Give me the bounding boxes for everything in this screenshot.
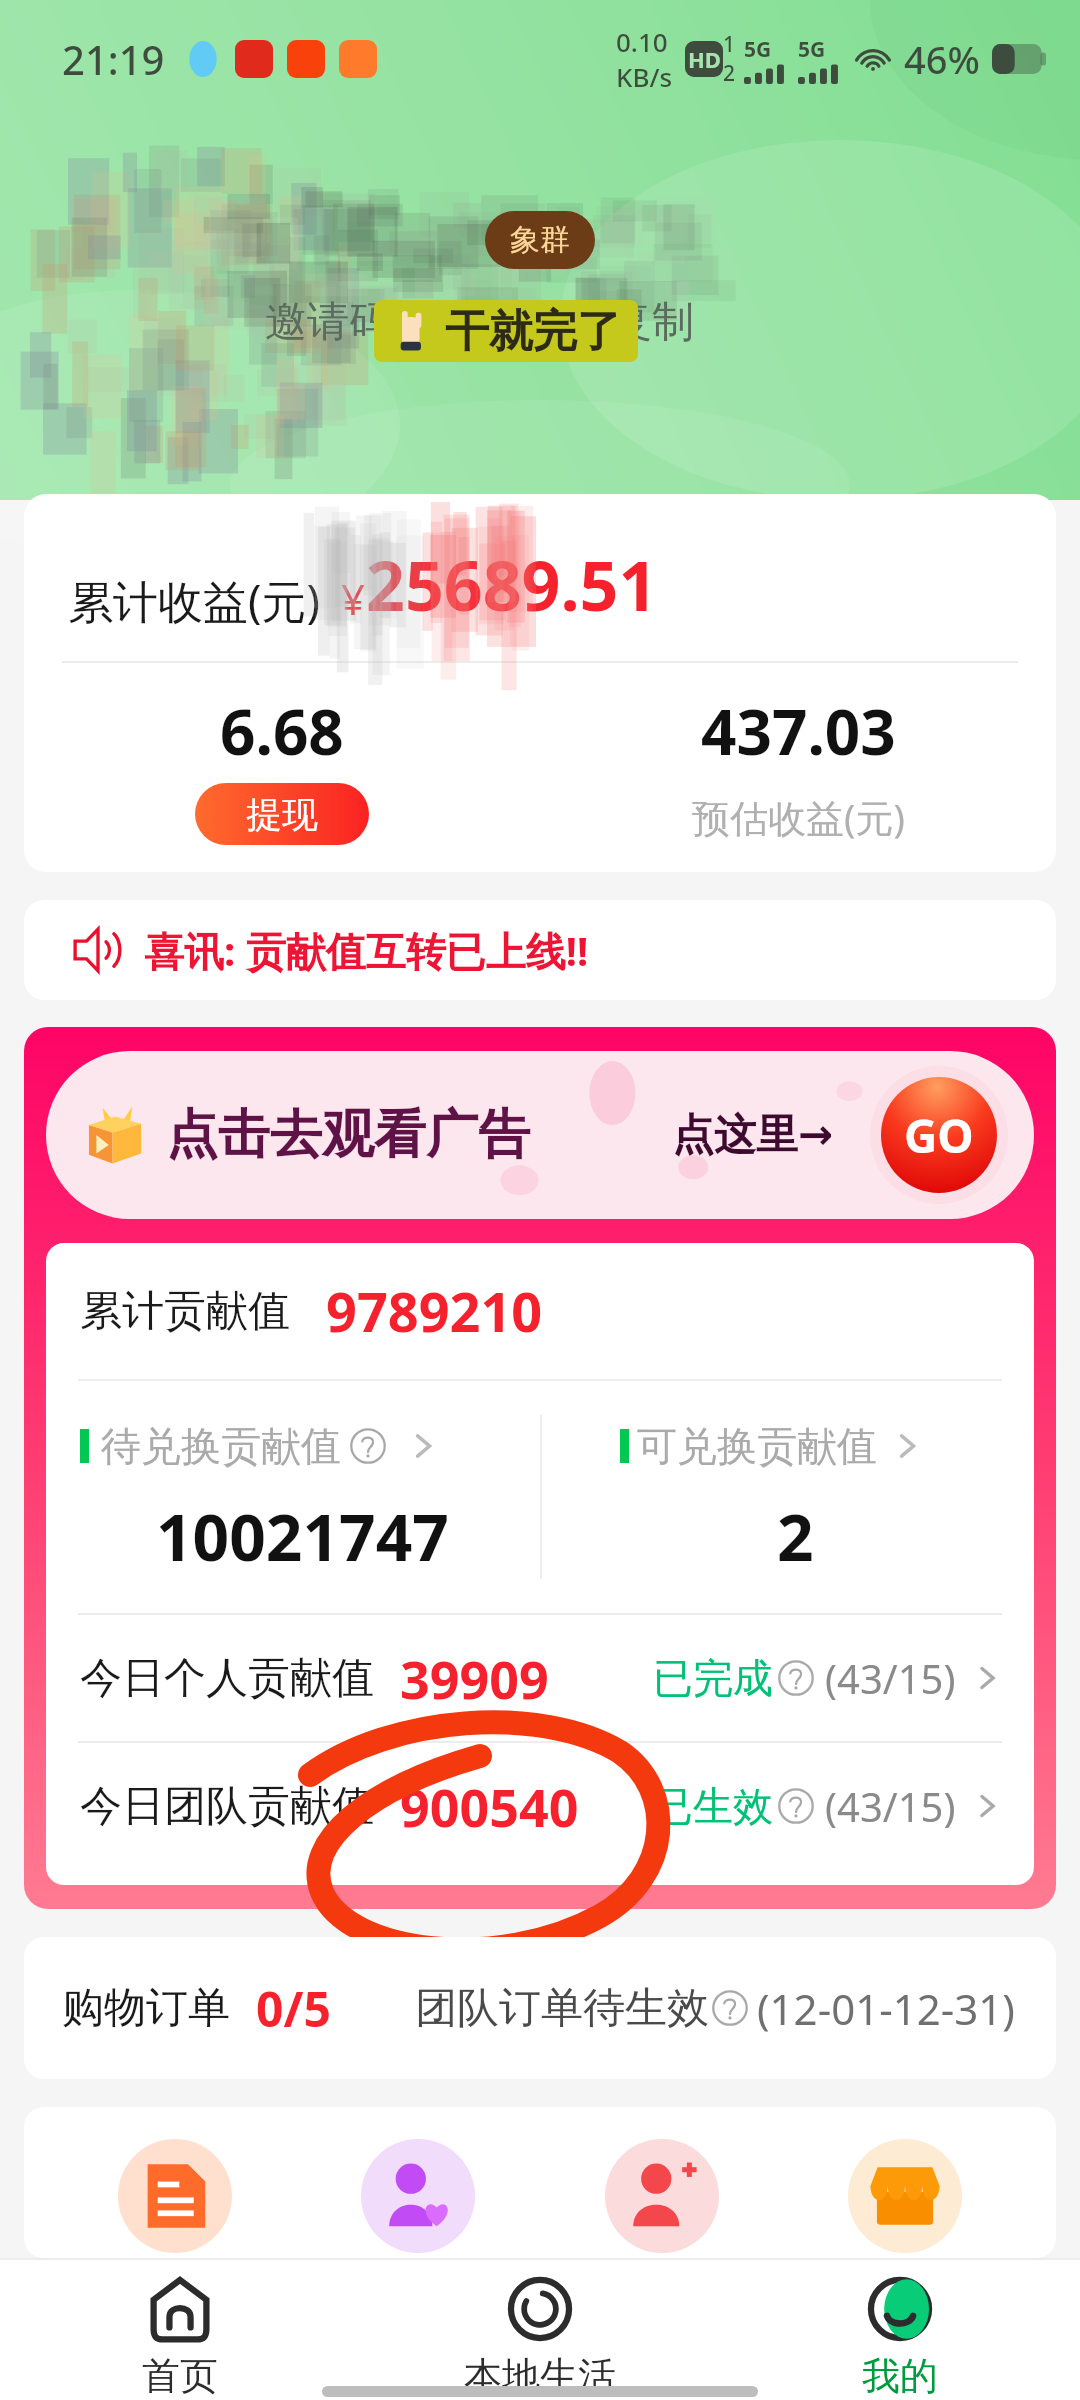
staticText: 象群 — [510, 221, 570, 259]
button[interactable]: 今日团队贡献值 — [80, 1743, 1004, 1869]
staticText: 2 — [723, 59, 736, 88]
staticText: 本地生活 — [464, 2352, 616, 2400]
staticText: 点这里→ — [672, 1109, 834, 1162]
staticText: 5G — [744, 35, 772, 64]
staticText: HD — [688, 44, 721, 74]
staticText: 喜讯: 贡献值互转已上线!! — [144, 923, 589, 978]
button[interactable]: GO — [870, 1066, 1008, 1204]
staticText: 10021747 — [156, 1493, 449, 1580]
staticText: KB/s — [616, 59, 673, 94]
button[interactable]: 本地生活 — [360, 2258, 720, 2400]
button[interactable]: 可兑换贡献值 — [542, 1421, 1034, 1580]
button[interactable]: 象群 — [485, 211, 595, 269]
staticText: 已生效 — [653, 1781, 773, 1831]
staticText: 累计收益(元) — [68, 570, 321, 631]
staticText: 可兑换贡献值 — [637, 1421, 877, 1471]
button[interactable]: 首页 — [0, 2258, 360, 2400]
button[interactable]: Friends — [361, 2139, 475, 2253]
staticText: 待兑换贡献值 — [101, 1421, 341, 1471]
staticText: 21:19 — [62, 32, 165, 86]
staticText: (12-01-12-31) — [757, 1980, 1015, 2037]
staticText: 提现 — [246, 792, 318, 837]
button[interactable]: 购物订单 — [24, 1937, 1056, 2079]
staticText: 2 — [777, 1493, 814, 1580]
button[interactable]: Shop — [848, 2139, 962, 2253]
button[interactable]: 待兑换贡献值 — [46, 1421, 540, 1580]
staticText: (43/15) — [825, 1779, 956, 1833]
staticText: 累计贡献值 — [80, 1285, 290, 1338]
staticText: 点击去观看广告 — [166, 1102, 530, 1168]
button[interactable]: Documents — [118, 2139, 232, 2253]
button[interactable]: 提现 — [195, 783, 369, 845]
staticText: 邀请码 — [265, 296, 391, 349]
button[interactable]: 喜讯: 贡献值互转已上线!! — [24, 900, 1056, 1000]
button[interactable]: Invite — [605, 2139, 719, 2253]
staticText: 1 — [723, 30, 736, 59]
staticText: 25689.51 — [366, 538, 658, 631]
staticText: 购物订单 — [62, 1982, 230, 2035]
staticText: 首页 — [142, 2352, 218, 2400]
staticText: (43/15) — [825, 1651, 956, 1705]
staticText: 9789210 — [326, 1274, 543, 1348]
staticText: 复制 — [610, 296, 694, 349]
staticText: 我的 — [862, 2352, 938, 2400]
staticText: GO — [904, 1104, 974, 1167]
staticText: 预估收益(元) — [692, 791, 905, 843]
staticText: 团队订单待生效 — [415, 1982, 709, 2035]
button[interactable]: 点击去观看广告 — [46, 1051, 1034, 1219]
staticText: 5G — [798, 35, 826, 64]
button[interactable]: 我的 — [720, 2258, 1080, 2400]
staticText: ¥ — [341, 570, 366, 627]
staticText: 干就完了 — [445, 304, 621, 359]
staticText: 0.10 — [616, 24, 668, 59]
staticText: 437.03 — [701, 689, 896, 773]
staticText: 已完成 — [653, 1653, 773, 1703]
staticText: 今日个人贡献值 — [80, 1652, 374, 1705]
staticText: 0/5 — [256, 1976, 331, 2041]
staticText: 39909 — [400, 1643, 549, 1714]
staticText: 6.68 — [220, 689, 344, 773]
staticText: 46% — [904, 33, 980, 85]
button[interactable]: 今日个人贡献值 — [80, 1615, 1004, 1741]
staticText: 今日团队贡献值 — [80, 1780, 374, 1833]
staticText: 900540 — [400, 1771, 579, 1842]
